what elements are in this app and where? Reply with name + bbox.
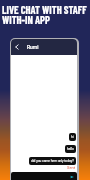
button[interactable]: Send: [68, 173, 75, 180]
button[interactable]: hello: [65, 145, 76, 153]
button[interactable]: did you came here only today?: [29, 157, 76, 165]
button[interactable]: Send: [11, 172, 77, 180]
staticText: LIVE CHAT WITH STAFF WITH-IN APP: [2, 3, 87, 26]
staticText: hello: [67, 147, 74, 151]
staticText: hi: [71, 135, 74, 139]
staticText: did you came here only today?: [31, 159, 74, 163]
staticText: Sent: [67, 165, 76, 170]
button[interactable]: Back: [11, 39, 77, 55]
button[interactable]: hi: [69, 133, 76, 141]
staticText: Rumi: [27, 44, 39, 50]
button[interactable]: Back: [11, 39, 22, 55]
